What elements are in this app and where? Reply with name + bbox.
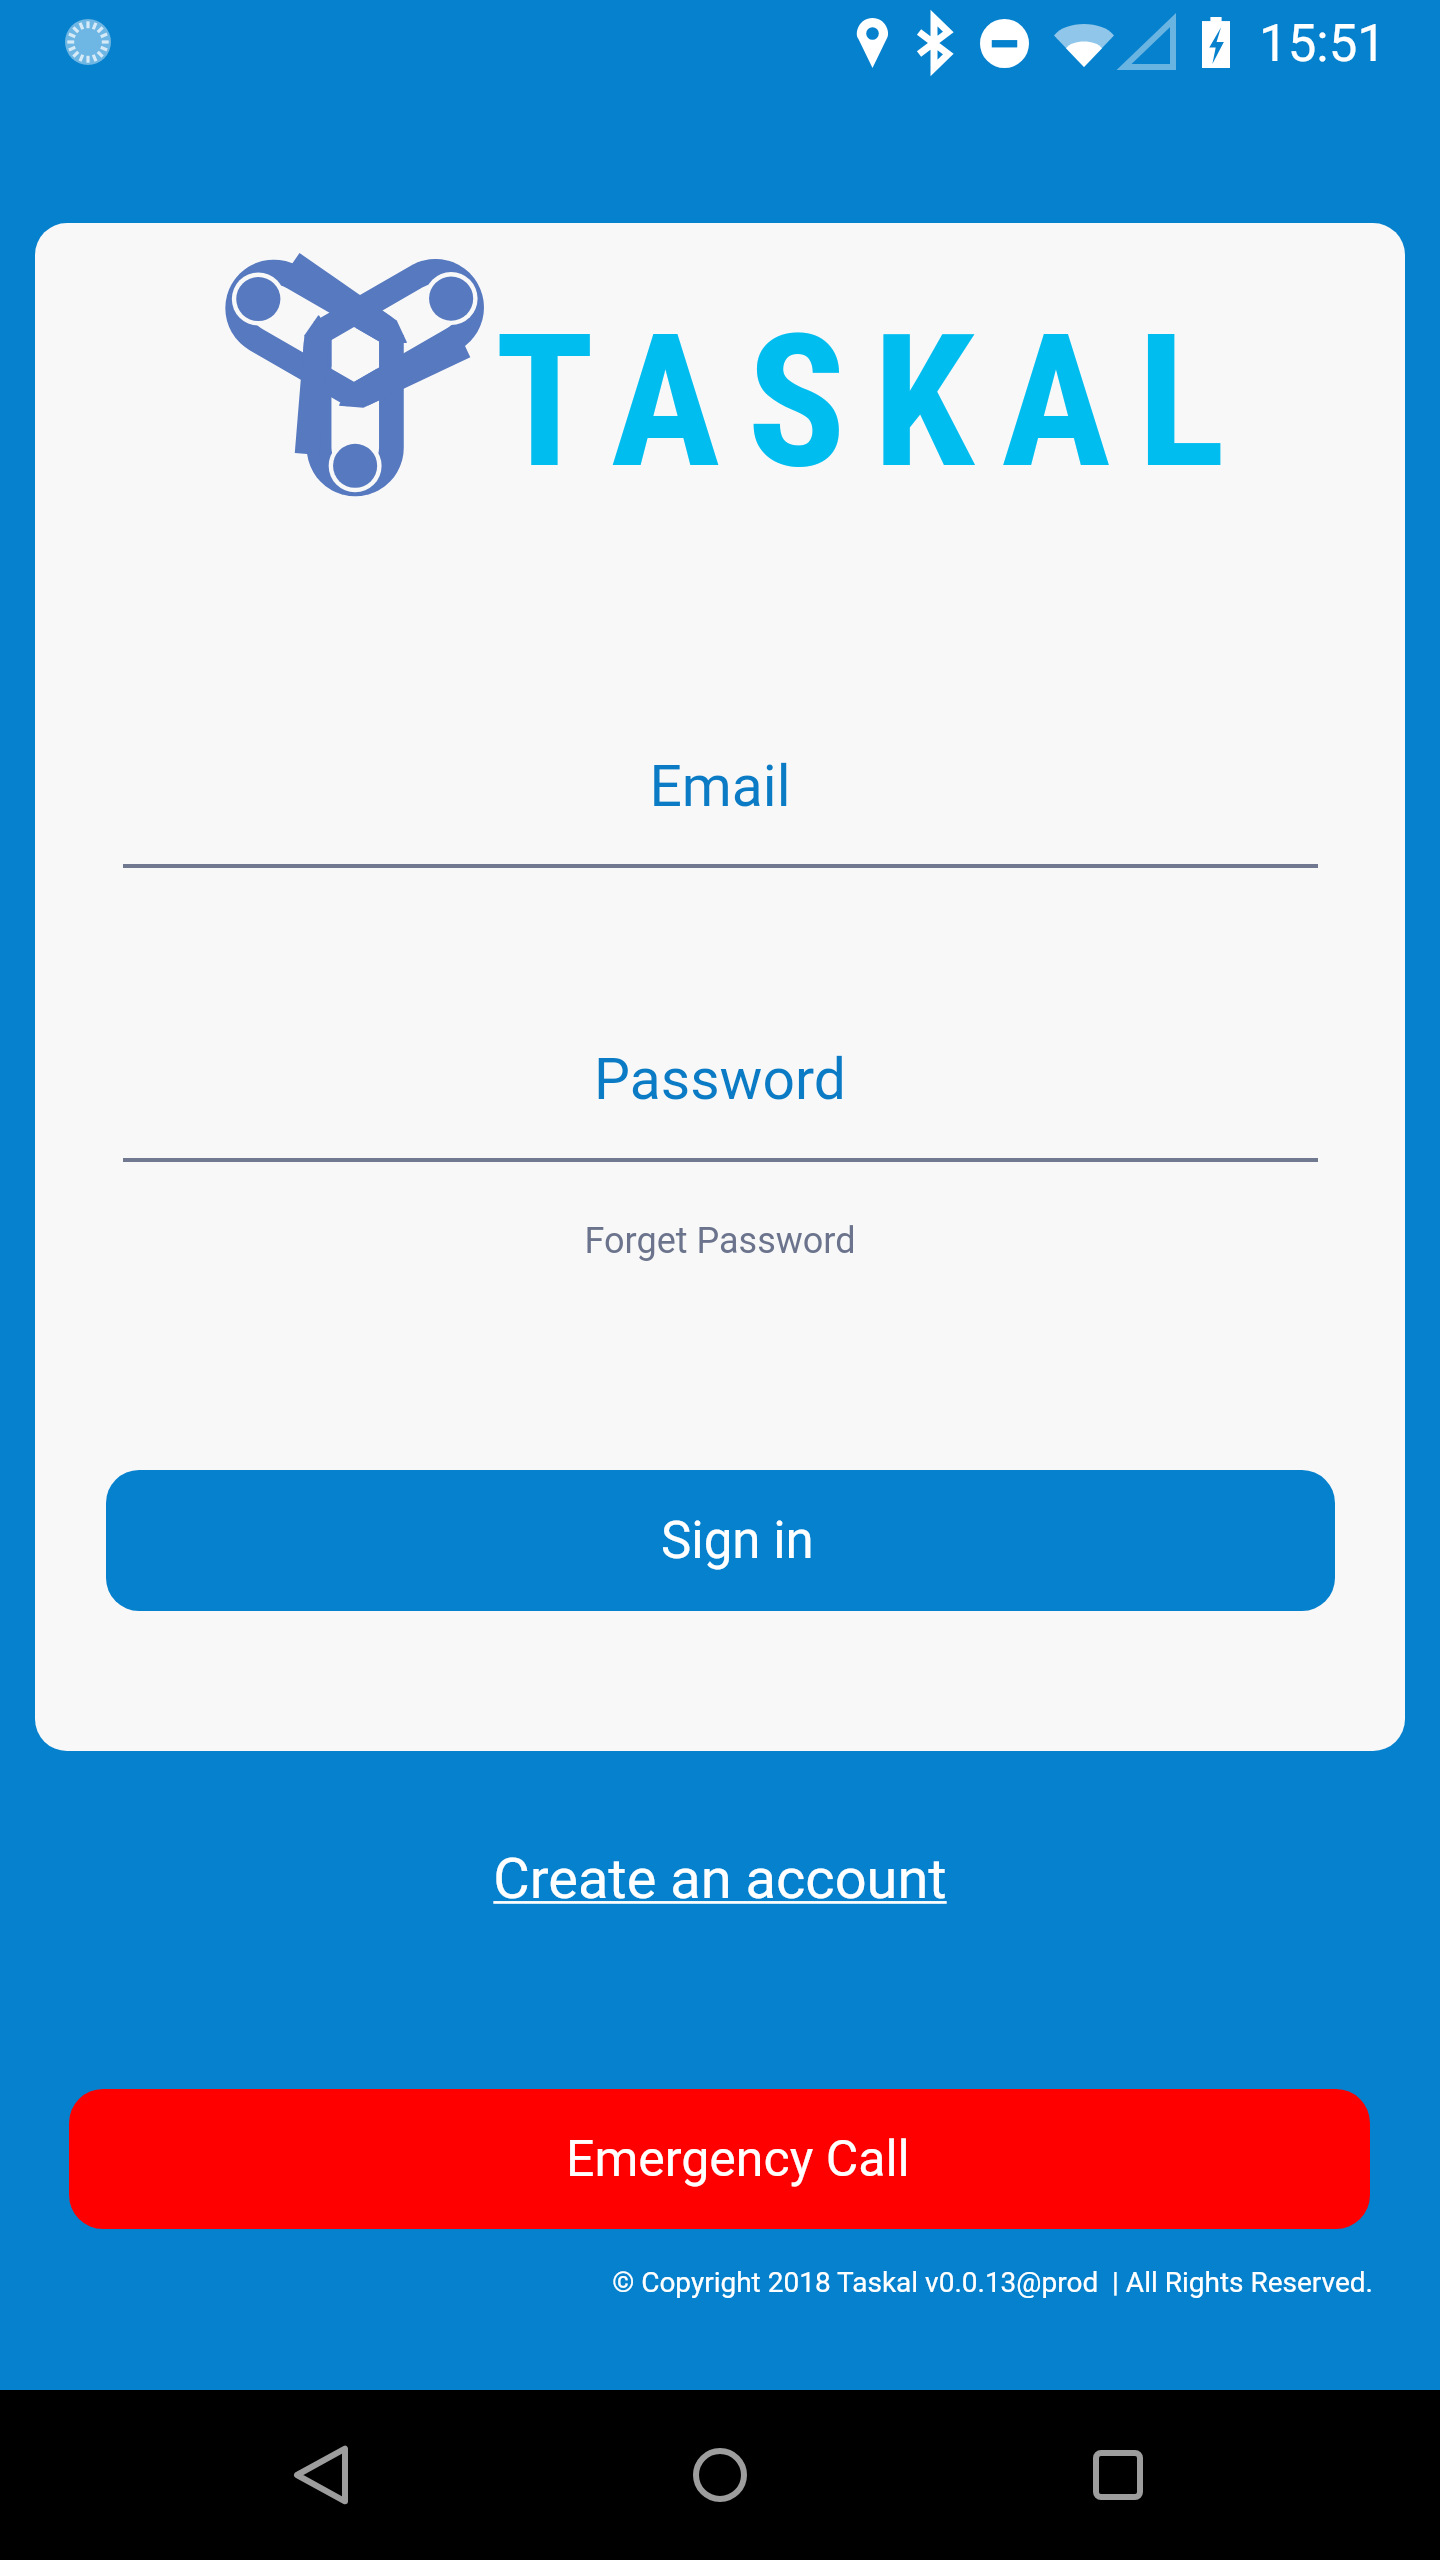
button[interactable]: Recents	[998, 2390, 1238, 2560]
staticText: Password	[35, 1046, 1405, 1113]
staticText: Emergency Call	[566, 2130, 910, 2189]
button[interactable]: Home	[600, 2390, 840, 2560]
button[interactable]: Forget Password	[35, 1220, 1405, 1262]
button[interactable]: Back	[202, 2390, 442, 2560]
button[interactable]: Create an account	[0, 1846, 1440, 1912]
staticText: Email	[35, 753, 1405, 820]
button[interactable]: Emergency Call	[69, 2089, 1370, 2229]
staticText: © Copyright 2018 Taskal v0.0.13@prod | A…	[0, 2266, 1373, 2299]
staticText: TASKAL	[495, 295, 1253, 509]
staticText: 15:51	[1259, 14, 1387, 74]
button[interactable]: Sign in	[106, 1470, 1335, 1611]
staticText: Sign in	[661, 1511, 814, 1571]
